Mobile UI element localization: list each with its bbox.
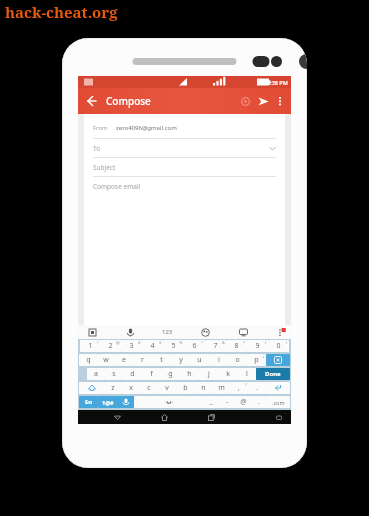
staticText: 4:38 PM: [267, 79, 288, 86]
button[interactable]: .: [248, 382, 266, 394]
button[interactable]: Voice input: [124, 326, 136, 338]
staticText: Subject: [93, 163, 116, 172]
button[interactable]: Back: [83, 92, 101, 110]
button[interactable]: 3: [121, 340, 142, 352]
button[interactable]: 6: [184, 340, 205, 352]
button[interactable]: s: [105, 368, 123, 380]
button[interactable]: 1@#: [98, 396, 117, 408]
staticText: m: [218, 383, 225, 393]
staticText: %: [179, 340, 183, 345]
staticText: -: [226, 397, 229, 407]
button[interactable]: d: [123, 368, 142, 380]
button[interactable]: h: [180, 368, 199, 380]
staticText: 100%: [257, 79, 270, 86]
staticText: 9: [255, 341, 260, 351]
staticText: (: [265, 340, 267, 345]
button[interactable]: 4: [142, 340, 163, 352]
staticText: .: [258, 397, 260, 407]
button[interactable]: e: [115, 354, 133, 366]
button[interactable]: Shift: [79, 382, 104, 394]
staticText: 1: [88, 341, 93, 351]
button[interactable]: w: [97, 354, 115, 366]
button[interactable]: f: [142, 368, 161, 380]
button[interactable]: Send: [254, 92, 272, 110]
button[interactable]: t: [152, 354, 171, 366]
button[interactable]: Attach: [236, 92, 254, 110]
button[interactable]: _: [203, 396, 219, 408]
button[interactable]: Hide keyboard: [272, 411, 285, 424]
staticText: c: [147, 383, 151, 393]
staticText: g: [168, 369, 173, 379]
button[interactable]: Recents: [205, 411, 218, 424]
staticText: @: [116, 340, 120, 345]
button[interactable]: 5: [163, 340, 184, 352]
button[interactable]: j: [199, 368, 218, 380]
button[interactable]: i: [209, 354, 228, 366]
button[interactable]: v: [158, 382, 176, 394]
button[interactable]: m: [212, 382, 230, 394]
staticText: *: [243, 340, 246, 345]
button[interactable]: 7: [205, 340, 226, 352]
staticText: ): [286, 340, 288, 345]
button[interactable]: -: [219, 396, 235, 408]
staticText: ^: [201, 340, 204, 345]
staticText: .com: [272, 399, 285, 406]
staticText: +: [262, 354, 265, 359]
button[interactable]: a: [87, 368, 105, 380]
staticText: 3: [129, 341, 134, 351]
button[interactable]: y: [171, 354, 190, 366]
button[interactable]: b: [176, 382, 194, 394]
button[interactable]: Voice: [117, 396, 134, 408]
button[interactable]: l: [237, 368, 256, 380]
button[interactable]: Compose email: [93, 177, 276, 195]
button[interactable]: g: [161, 368, 180, 380]
button[interactable]: 2: [100, 340, 121, 352]
button[interactable]: z: [104, 382, 122, 394]
button[interactable]: ,: [230, 382, 248, 394]
button[interactable]: En: [79, 396, 98, 408]
button[interactable]: p: [247, 354, 266, 366]
staticText: n: [201, 383, 206, 393]
staticText: a: [94, 369, 98, 379]
button[interactable]: r: [133, 354, 152, 366]
button[interactable]: @: [235, 396, 251, 408]
button[interactable]: Back: [111, 411, 124, 424]
button[interactable]: 8: [226, 340, 247, 352]
button[interactable]: Subject: [93, 158, 276, 176]
staticText: _: [209, 397, 213, 407]
button[interactable]: More options: [272, 93, 288, 109]
staticText: ,: [238, 383, 240, 393]
button[interactable]: Enter: [266, 382, 290, 394]
staticText: l: [246, 369, 248, 379]
button[interactable]: .: [251, 396, 267, 408]
button[interactable]: 0: [268, 340, 289, 352]
staticText: f: [150, 369, 153, 379]
button[interactable]: o: [228, 354, 247, 366]
button[interactable]: 1: [80, 340, 100, 352]
button[interactable]: n: [194, 382, 212, 394]
staticText: w: [103, 355, 109, 365]
button[interactable]: To: [93, 139, 276, 157]
button[interactable]: Backspace: [266, 354, 290, 366]
button[interactable]: Emoji: [199, 326, 211, 338]
button[interactable]: Clipboard: [86, 326, 98, 338]
button[interactable]: Done: [256, 368, 290, 380]
button[interactable]: Home: [158, 411, 171, 424]
staticText: u: [197, 355, 202, 365]
staticText: s: [112, 369, 116, 379]
button[interactable]: x: [122, 382, 140, 394]
button[interactable]: 123: [162, 328, 173, 336]
staticText: q: [86, 355, 91, 365]
button[interactable]: k: [218, 368, 237, 380]
button[interactable]: q: [79, 354, 97, 366]
button[interactable]: .com: [267, 396, 290, 408]
button[interactable]: Space: [134, 396, 203, 408]
staticText: &: [222, 340, 225, 345]
button[interactable]: More: [275, 326, 287, 338]
button[interactable]: 9: [247, 340, 268, 352]
staticText: Compose: [106, 94, 151, 108]
button[interactable]: Keyboard settings: [237, 326, 249, 338]
staticText: zero4096@gmail.com: [116, 124, 177, 132]
button[interactable]: u: [190, 354, 209, 366]
button[interactable]: c: [140, 382, 158, 394]
